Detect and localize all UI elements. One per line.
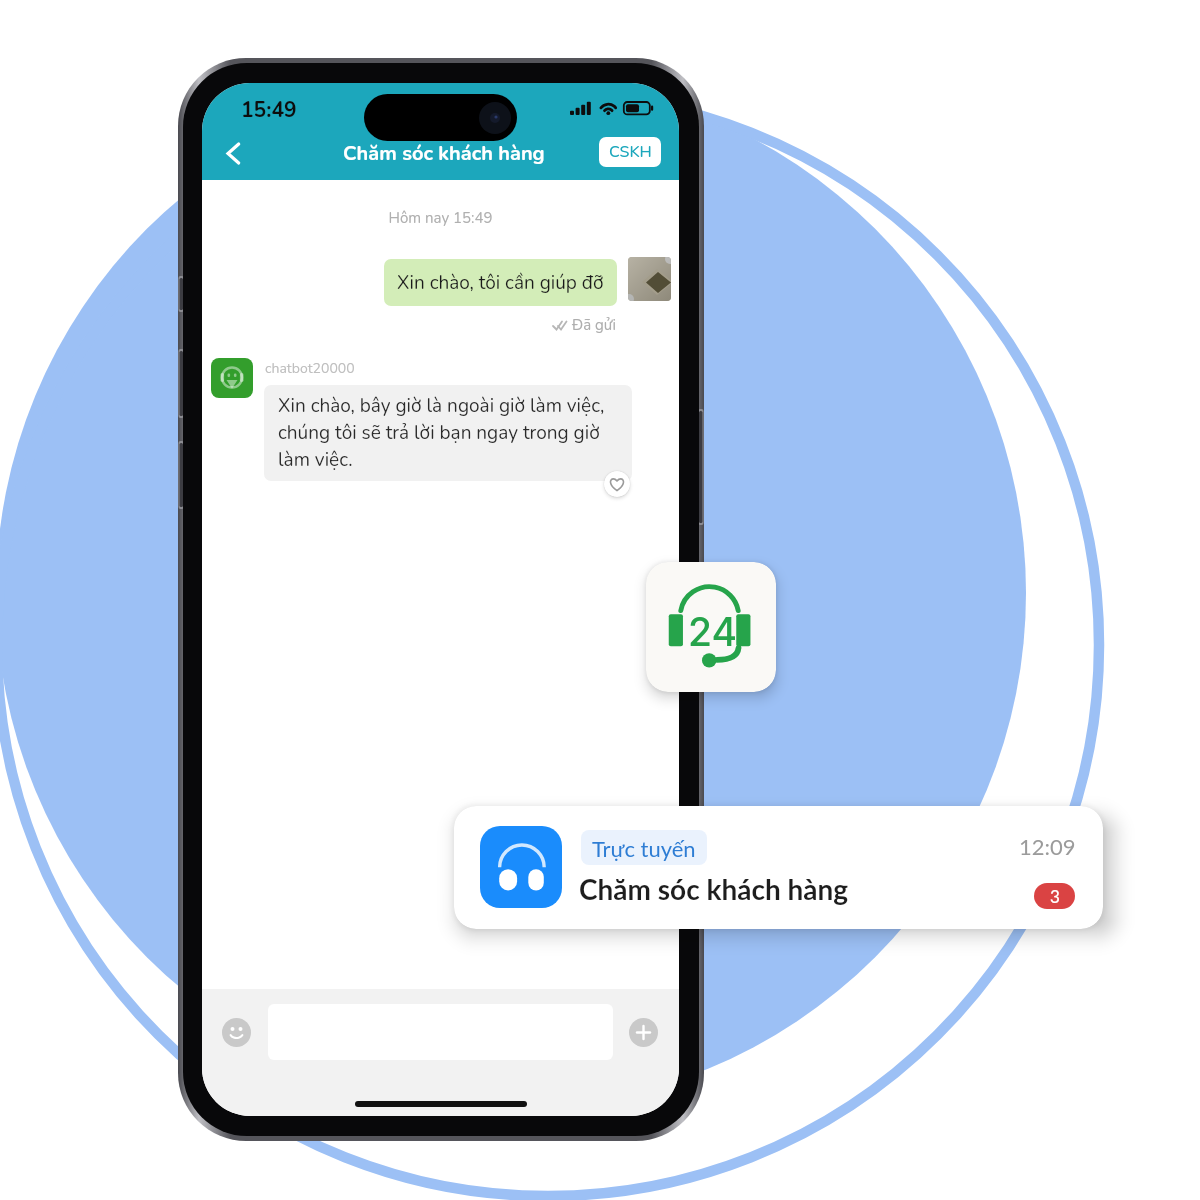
button[interactable]: Like bbox=[604, 471, 630, 497]
staticText: Trực tuyến bbox=[592, 835, 696, 861]
staticText: Đã gửi bbox=[572, 315, 616, 335]
button[interactable]: Xin chào, bây giờ là ngoài giờ làm việc,… bbox=[264, 385, 632, 481]
staticText: 24 bbox=[688, 608, 738, 655]
button[interactable]: CSKH bbox=[599, 137, 661, 167]
button[interactable]: Trực tuyến bbox=[454, 806, 1103, 929]
button[interactable]: Add bbox=[629, 1018, 658, 1047]
staticText: 3 bbox=[1050, 886, 1060, 906]
staticText: Xin chào, tôi cần giúp đỡ bbox=[397, 270, 604, 296]
button[interactable]: Emoji bbox=[222, 1018, 251, 1047]
staticText: Chăm sóc khách hàng bbox=[579, 872, 849, 906]
staticText: 12:09 bbox=[1019, 833, 1076, 859]
button[interactable]: Back bbox=[212, 132, 256, 176]
button[interactable]: 24/7 customer support bbox=[646, 562, 776, 692]
staticText: chatbot20000 bbox=[265, 359, 355, 378]
staticText: Hôm nay 15:49 bbox=[202, 208, 679, 228]
staticText: 15:49 bbox=[241, 96, 297, 125]
staticText: Chăm sóc khách hàng bbox=[343, 140, 545, 167]
button[interactable]: Xin chào, tôi cần giúp đỡ bbox=[384, 259, 617, 306]
staticText: CSKH bbox=[609, 141, 652, 163]
staticText: Xin chào, bây giờ là ngoài giờ làm việc,… bbox=[278, 393, 622, 473]
